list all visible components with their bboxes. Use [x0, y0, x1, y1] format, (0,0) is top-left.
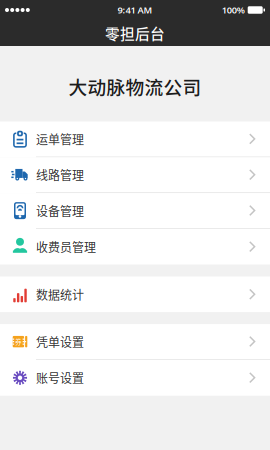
staticText: 运单管理	[36, 130, 84, 148]
staticText: 券	[15, 337, 22, 346]
staticText: 设备管理	[36, 202, 84, 219]
button[interactable]: 收费员管理	[0, 229, 270, 265]
staticText: 大动脉物流公司	[68, 73, 201, 100]
staticText: 9:41 AM	[117, 4, 152, 16]
button[interactable]: 券	[0, 324, 270, 360]
button[interactable]: 设备管理	[0, 193, 270, 229]
staticText: 收费员管理	[36, 238, 96, 255]
button[interactable]: 线路管理	[0, 157, 270, 193]
button[interactable]: 运单管理	[0, 121, 270, 157]
staticText: 线路管理	[36, 166, 84, 184]
staticText: 数据统计	[36, 286, 84, 303]
staticText: 100%	[222, 4, 245, 16]
button[interactable]: 账号设置	[0, 360, 270, 396]
staticText: 凭单设置	[36, 333, 84, 350]
button[interactable]: 数据统计	[0, 276, 270, 312]
staticText: 零担后台	[105, 22, 165, 44]
staticText: 账号设置	[36, 369, 84, 386]
